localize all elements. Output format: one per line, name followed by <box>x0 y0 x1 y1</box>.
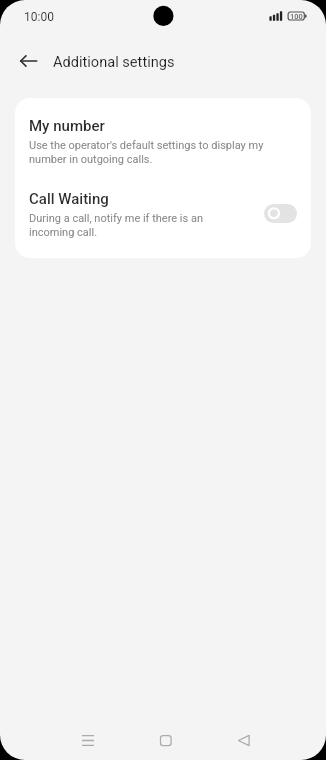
button[interactable]: Call Waiting toggle <box>264 204 297 223</box>
staticText: Additional settings <box>53 53 175 70</box>
staticText: 10:00 <box>24 10 54 24</box>
staticText: Call Waiting <box>29 190 109 208</box>
button[interactable]: Back <box>9 41 48 80</box>
button[interactable]: Call Waiting <box>15 170 311 258</box>
staticText: My number <box>29 117 105 135</box>
staticText: Use the operator's default settings to d… <box>29 139 274 166</box>
staticText: During a call, notify me if there is an … <box>29 212 211 239</box>
staticText: 100 <box>290 12 303 21</box>
button[interactable]: Recent apps <box>68 722 108 758</box>
button[interactable]: Back <box>224 722 264 758</box>
button[interactable]: My number <box>15 98 311 170</box>
button[interactable]: Home <box>146 722 186 758</box>
